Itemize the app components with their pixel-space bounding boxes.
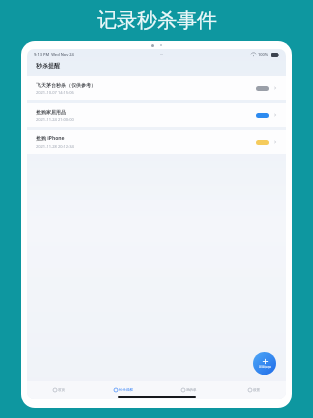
staticText: 2021-10-07 14:15:06 [36, 90, 74, 95]
staticText: 2021-11-28 20:12:34 [36, 144, 74, 149]
staticText: 100% [258, 52, 269, 57]
staticText: 设置 [253, 388, 260, 392]
button[interactable]: 首页 [27, 381, 91, 399]
button[interactable]: 抢购家居用品 [27, 103, 286, 127]
staticText: 记录秒杀事件 [97, 8, 217, 33]
staticText: 飞天茅台秒杀（仅供参考） [36, 82, 96, 88]
button[interactable]: 设置 [221, 381, 286, 399]
button[interactable]: 新建提醒 [253, 352, 276, 375]
button[interactable]: 抢购 iPhone [27, 130, 286, 154]
button[interactable]: 飞天茅台秒杀（仅供参考） [27, 76, 286, 100]
staticText: 抢购家居用品 [36, 109, 66, 115]
staticText: 秒杀提醒 [119, 388, 133, 392]
button[interactable]: 秒杀提醒 [91, 381, 156, 399]
staticText: 秒杀提醒 [36, 62, 60, 70]
staticText: 抢购 iPhone [36, 135, 65, 142]
staticText: ··· [160, 52, 164, 57]
staticText: 9:13 PM Wed Nov 24 [34, 52, 74, 57]
button[interactable]: 我的单 [156, 381, 221, 399]
staticText: 2021-11-24 21:00:00 [36, 117, 74, 122]
staticText: 新建提醒 [259, 365, 271, 369]
staticText: 首页 [58, 388, 65, 392]
staticText: 我的单 [186, 388, 197, 392]
